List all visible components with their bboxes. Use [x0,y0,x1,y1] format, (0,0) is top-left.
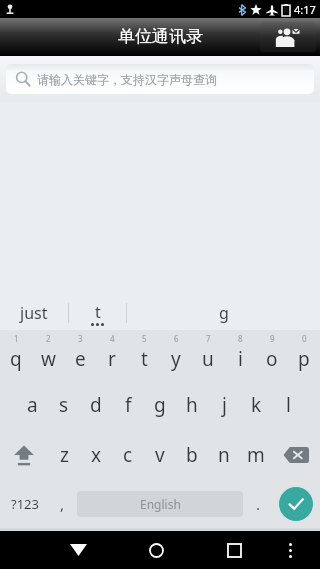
button[interactable]: 2 [32,330,64,380]
staticText: g [219,302,229,324]
button[interactable]: f [112,380,144,430]
staticText: y [171,346,181,372]
button[interactable]: Shift [0,430,48,480]
button[interactable]: a [16,380,48,430]
button[interactable]: Home [132,531,181,569]
staticText: 1 [14,333,19,344]
staticText: , [60,494,65,514]
staticText: f [125,392,132,418]
staticText: 6 [174,333,179,344]
button[interactable]: Recents [210,531,259,569]
staticText: a [27,392,38,418]
staticText: r [108,346,116,372]
staticText: d [90,392,102,418]
staticText: w [41,346,56,372]
staticText: 4:17 [294,2,316,17]
button[interactable]: z [48,430,80,480]
staticText: j [222,392,227,418]
button[interactable]: t [69,296,126,330]
staticText: h [186,392,198,418]
button[interactable]: 请输入关键字，支持汉字声母查询 [6,64,314,94]
button[interactable]: h [176,380,208,430]
staticText: u [202,346,214,372]
button[interactable]: x [80,430,112,480]
button[interactable]: n [208,430,240,480]
staticText: 2 [46,333,51,344]
staticText: o [266,346,278,372]
button[interactable]: Backspace [272,430,320,480]
staticText: 3 [78,333,83,344]
staticText: z [60,442,69,468]
button[interactable]: k [240,380,272,430]
button[interactable]: Comma [49,480,75,528]
button[interactable]: 0 [288,330,320,380]
button[interactable]: v [144,430,176,480]
button[interactable]: Hide keyboard [54,531,103,569]
staticText: . [256,494,261,514]
button[interactable]: 8 [224,330,256,380]
staticText: p [298,346,310,372]
button[interactable]: m [240,430,272,480]
button[interactable]: just [0,296,68,330]
button[interactable]: 6 [160,330,192,380]
staticText: c [123,442,133,468]
staticText: just [20,302,48,324]
button[interactable]: 7 [192,330,224,380]
staticText: 0 [302,333,307,344]
button[interactable]: j [208,380,240,430]
staticText: v [155,442,165,468]
staticText: x [91,442,102,468]
button[interactable]: Contacts group [260,22,316,52]
staticText: 7 [206,333,211,344]
staticText: 4 [110,333,115,344]
staticText: e [75,346,86,372]
button[interactable]: 9 [256,330,288,380]
button[interactable]: English [77,491,243,517]
button[interactable]: g [144,380,176,430]
button[interactable]: 5 [128,330,160,380]
button[interactable]: l [272,380,304,430]
button[interactable]: s [48,380,80,430]
staticText: k [251,392,262,418]
staticText: m [247,442,265,468]
staticText: 9 [270,333,275,344]
staticText: 5 [142,333,147,344]
button[interactable]: Done [271,480,320,528]
staticText: i [238,346,243,372]
staticText: ?123 [11,495,39,513]
button[interactable]: 3 [64,330,96,380]
button[interactable]: 1 [0,330,32,380]
button[interactable]: ?123 [0,480,49,528]
button[interactable]: d [80,380,112,430]
staticText: 8 [238,333,243,344]
staticText: s [59,392,69,418]
button[interactable]: c [112,430,144,480]
button[interactable]: 4 [96,330,128,380]
staticText: t [141,346,148,372]
button[interactable]: g [127,296,320,330]
staticText: 请输入关键字，支持汉字声母查询 [37,72,217,87]
staticText: English [140,496,181,512]
staticText: 单位通讯录 [118,26,203,47]
button[interactable]: More options [271,531,310,569]
staticText: t [95,301,101,323]
staticText: b [186,442,198,468]
staticText: n [218,442,230,468]
staticText: g [154,392,166,418]
staticText: l [286,392,291,418]
staticText: q [10,346,22,372]
button[interactable]: b [176,430,208,480]
button[interactable]: Period [245,480,271,528]
